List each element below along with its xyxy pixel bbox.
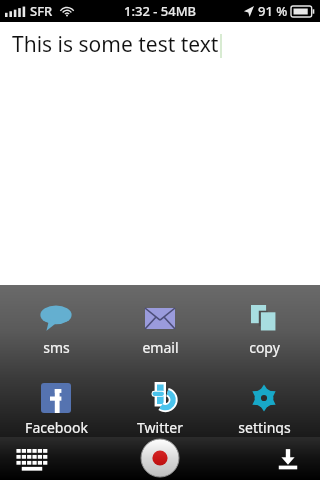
staticText: Facebook bbox=[25, 418, 88, 435]
staticText: 91 % bbox=[258, 2, 288, 20]
button[interactable]: sms bbox=[8, 299, 104, 359]
button[interactable]: Record bbox=[140, 438, 180, 478]
button[interactable]: Download bbox=[268, 441, 308, 477]
staticText: Twitter bbox=[137, 418, 183, 435]
staticText: 1:32 - 54MB bbox=[124, 2, 197, 20]
button[interactable]: Keyboard bbox=[10, 441, 54, 477]
button[interactable]: Facebook bbox=[8, 379, 104, 437]
staticText: copy bbox=[249, 338, 280, 357]
staticText: This is some test text bbox=[12, 30, 219, 59]
staticText: email bbox=[142, 338, 179, 357]
button[interactable]: Twitter bbox=[112, 379, 208, 437]
button[interactable]: settings bbox=[216, 379, 312, 437]
staticText: sms bbox=[43, 338, 70, 357]
staticText: settings bbox=[238, 418, 291, 435]
staticText: SFR bbox=[30, 2, 53, 20]
button[interactable]: copy bbox=[216, 299, 312, 359]
button[interactable]: email bbox=[112, 299, 208, 359]
